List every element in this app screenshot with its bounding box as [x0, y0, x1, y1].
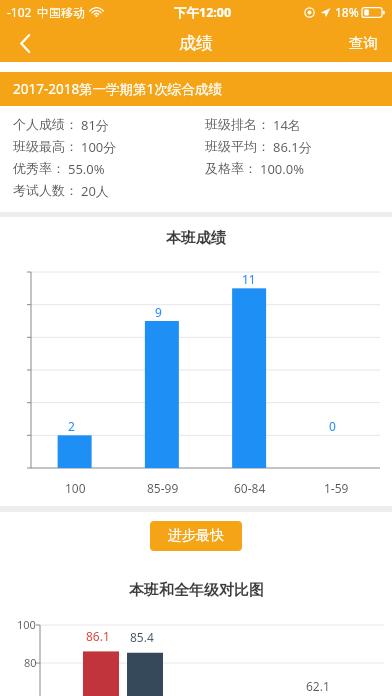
staticText: 100.0%: [260, 160, 305, 178]
staticText: 班级最高：: [13, 138, 78, 154]
staticText: 20人: [81, 182, 109, 200]
staticText: 100分: [81, 138, 117, 156]
staticText: 85.4: [130, 629, 154, 645]
button[interactable]: 进步最快: [150, 521, 242, 551]
staticText: 个人成绩：: [13, 116, 78, 132]
staticText: 80: [24, 655, 37, 670]
staticText: 中国移动: [37, 5, 85, 20]
staticText: 18%: [335, 4, 359, 20]
button[interactable]: Back: [0, 24, 50, 62]
staticText: 2017-2018第一学期第1次综合成绩: [13, 80, 222, 98]
staticText: 班级排名：: [205, 116, 270, 132]
staticText: 55.0%: [68, 160, 105, 178]
staticText: -102: [7, 4, 32, 20]
staticText: 优秀率：: [13, 160, 65, 176]
staticText: 11: [242, 271, 256, 287]
staticText: 考试人数：: [13, 182, 78, 198]
staticText: 进步最快: [168, 527, 224, 545]
staticText: 0: [329, 418, 336, 434]
staticText: 2: [68, 418, 75, 434]
staticText: 1-59: [324, 480, 349, 496]
staticText: 86.1: [86, 628, 110, 644]
staticText: 85-99: [147, 480, 179, 496]
staticText: 查询: [349, 34, 378, 52]
staticText: 本班成绩: [166, 229, 226, 248]
staticText: 成绩: [179, 33, 213, 54]
staticText: 86.1分: [273, 138, 312, 156]
staticText: 9: [155, 304, 162, 320]
button[interactable]: 查询: [334, 24, 392, 62]
staticText: 14名: [273, 116, 301, 134]
staticText: 班级平均：: [205, 138, 270, 154]
staticText: 81分: [81, 116, 109, 134]
staticText: 62.1: [306, 678, 330, 694]
staticText: 60-84: [234, 480, 266, 496]
staticText: 及格率：: [205, 160, 257, 176]
staticText: 100: [17, 617, 36, 632]
staticText: 100: [65, 480, 86, 496]
staticText: 本班和全年级对比图: [129, 581, 264, 600]
staticText: 下午12:00: [174, 4, 232, 21]
